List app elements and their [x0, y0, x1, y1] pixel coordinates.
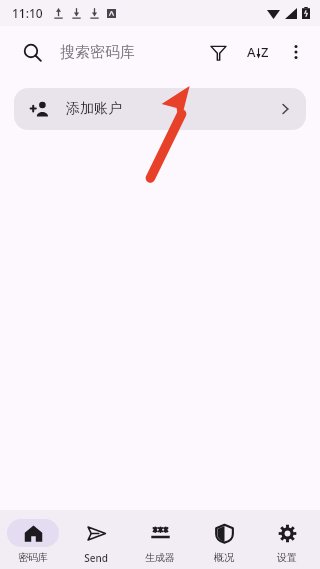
- staticText: 添加账户: [66, 100, 122, 118]
- staticText: 搜索密码库: [60, 43, 135, 62]
- button[interactable]: Filter: [200, 34, 236, 70]
- staticText: 密码库: [18, 551, 48, 564]
- staticText: Z: [261, 43, 269, 61]
- staticText: 概况: [214, 551, 234, 564]
- button[interactable]: More options: [278, 34, 314, 70]
- button[interactable]: 密码库: [2, 515, 64, 564]
- staticText: 11:10: [12, 5, 43, 21]
- button[interactable]: 生成器: [129, 515, 191, 564]
- staticText: Send: [84, 551, 108, 565]
- button[interactable]: 搜索密码库: [60, 30, 200, 74]
- button[interactable]: Search: [14, 34, 50, 70]
- button[interactable]: 概况: [193, 515, 255, 564]
- button[interactable]: Sort A to Z: [240, 34, 276, 70]
- staticText: A: [247, 43, 256, 61]
- button[interactable]: 添加账户: [14, 88, 306, 130]
- button[interactable]: 设置: [256, 515, 318, 564]
- staticText: 设置: [277, 551, 297, 564]
- staticText: 生成器: [145, 551, 175, 564]
- button[interactable]: Send: [65, 515, 127, 565]
